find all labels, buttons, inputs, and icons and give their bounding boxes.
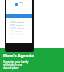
button[interactable] (10, 21, 24, 23)
button[interactable] (10, 30, 22, 32)
staticText: Organize your family schedule in one sha… (3, 60, 29, 69)
button[interactable] (10, 24, 23, 26)
staticText: Mom's Agenda (3, 53, 34, 59)
button[interactable] (10, 27, 24, 29)
button[interactable] (10, 33, 23, 35)
